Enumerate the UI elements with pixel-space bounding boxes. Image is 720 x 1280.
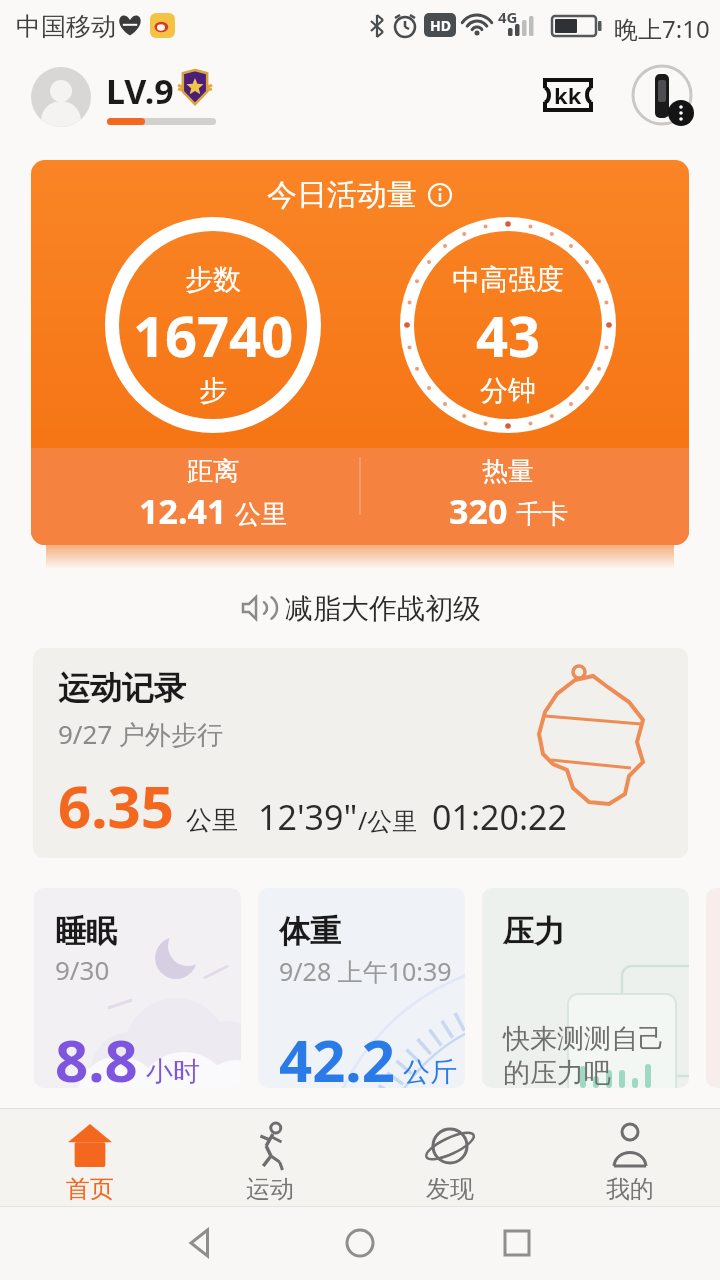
staticText: 9/27 户外步行 — [58, 716, 224, 752]
button[interactable]: 压力 — [482, 888, 689, 1088]
staticText: 12'39" — [258, 794, 358, 840]
staticText: 减脂大作战初级 — [285, 591, 481, 626]
button[interactable]: 体重 — [258, 888, 465, 1088]
button[interactable]: 运动记录 — [33, 648, 688, 858]
staticText: 公里 — [235, 498, 287, 531]
staticText: 步 — [199, 373, 227, 408]
staticText: 9/30 — [55, 952, 110, 987]
staticText: /公里 — [358, 803, 418, 837]
staticText: 4G — [498, 7, 518, 27]
staticText: LV.9 — [106, 68, 174, 114]
staticText: 小时 — [146, 1055, 200, 1088]
staticText: 步数 — [185, 262, 241, 297]
staticText: 8.8 — [55, 1020, 138, 1088]
staticText: 6.35 — [58, 766, 174, 845]
staticText: HD — [430, 16, 451, 35]
button[interactable]: 首页 — [0, 1108, 180, 1206]
staticText: 睡眠 — [55, 912, 117, 951]
staticText: 体重 — [279, 912, 341, 951]
staticText: 压力 — [503, 912, 565, 951]
staticText: 千卡 — [516, 498, 568, 531]
staticText: kk — [554, 80, 582, 110]
button[interactable]: 睡眠 — [34, 888, 241, 1088]
staticText: 晚上7:10 — [614, 12, 710, 45]
staticText: 首页 — [66, 1174, 114, 1204]
staticText: 9/28 上午10:39 — [279, 954, 452, 988]
staticText: 中国移动 — [16, 11, 116, 42]
button[interactable]: 减脂大作战初级 — [0, 588, 720, 628]
staticText: 中高强度 — [452, 262, 564, 297]
button[interactable] — [185, 1228, 215, 1258]
staticText: 公斤 — [403, 1055, 457, 1088]
staticText: 运动 — [246, 1174, 294, 1204]
staticText: 公里 — [186, 804, 238, 837]
button[interactable] — [631, 64, 693, 126]
button[interactable] — [176, 68, 214, 106]
staticText: 43 — [476, 297, 541, 373]
button[interactable]: 发现 — [360, 1108, 540, 1206]
button[interactable] — [345, 1228, 375, 1258]
staticText: 今日活动量 — [267, 176, 417, 214]
button[interactable]: 运动 — [180, 1108, 360, 1206]
staticText: 12.41 — [139, 488, 227, 534]
staticText: 320 — [449, 488, 508, 534]
staticText: 01:20:22 — [432, 794, 567, 840]
staticText: 发现 — [426, 1174, 474, 1204]
staticText: 42.2 — [279, 1020, 395, 1088]
button[interactable] — [502, 1228, 532, 1258]
staticText: 距离 — [187, 455, 239, 488]
button[interactable] — [31, 67, 91, 127]
staticText: 运动记录 — [58, 668, 186, 708]
staticText: 16740 — [133, 297, 294, 373]
button[interactable]: 我的 — [540, 1108, 720, 1206]
staticText: 我的 — [606, 1174, 654, 1204]
staticText: 热量 — [482, 455, 534, 488]
button[interactable]: 今日活动量 — [31, 160, 689, 545]
button[interactable]: kk — [543, 78, 593, 112]
staticText: 快来测测自己 的压力吧 — [503, 1022, 665, 1088]
staticText: 分钟 — [480, 373, 536, 408]
